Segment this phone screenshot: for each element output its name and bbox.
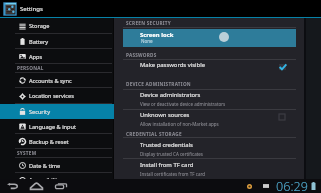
staticText: PERSONAL xyxy=(17,65,44,71)
staticText: Battery xyxy=(29,38,49,46)
staticText: SCREEN SECURITY xyxy=(126,20,171,26)
staticText: Backup & reset xyxy=(29,138,69,146)
button[interactable]: Trusted credentials xyxy=(114,140,304,160)
button[interactable]: Install from TF card xyxy=(114,160,304,180)
staticText: Allow installation of non-Market apps xyxy=(140,121,219,127)
staticText: Unknown sources xyxy=(140,111,190,119)
button[interactable]: Language & input xyxy=(0,119,114,134)
button[interactable]: Accessibility xyxy=(0,173,114,187)
button[interactable]: Home xyxy=(25,179,47,193)
button[interactable]: Make passwords visible xyxy=(114,62,304,76)
button[interactable]: Storage xyxy=(0,18,114,34)
staticText: Date & time xyxy=(29,162,61,170)
button[interactable]: Device administrators xyxy=(114,90,304,110)
staticText: 06:29 xyxy=(276,178,308,192)
staticText: Language & input xyxy=(29,123,76,131)
staticText: Screen lock xyxy=(140,31,174,39)
staticText: Accounts & sync xyxy=(29,77,72,85)
staticText: CREDENTIAL STORAGE xyxy=(126,131,182,137)
staticText: Make passwords visible xyxy=(140,61,206,69)
staticText: Device administrators xyxy=(140,91,201,99)
staticText: View or deactivate device administrators xyxy=(140,101,226,107)
staticText: Trusted credentials xyxy=(140,141,193,149)
staticText: Apps xyxy=(29,53,43,61)
button[interactable]: Screen lock xyxy=(123,29,296,47)
button[interactable]: Recent apps xyxy=(50,179,71,193)
staticText: Location services xyxy=(29,92,74,100)
staticText: SYSTEM xyxy=(17,150,37,156)
other: Settings app xyxy=(4,3,16,15)
button[interactable]: Apps xyxy=(0,49,114,64)
staticText: DEVICE ADMINISTRATION xyxy=(126,81,191,87)
button[interactable]: Accounts & sync xyxy=(0,73,114,88)
staticText: Storage xyxy=(29,22,50,30)
staticText: PASSWORDS xyxy=(126,52,157,58)
button[interactable]: Security xyxy=(0,104,114,119)
staticText: Settings xyxy=(20,5,43,13)
staticText: Install from TF card xyxy=(140,161,194,169)
staticText: Accessibility xyxy=(29,176,61,184)
staticText: None xyxy=(141,38,153,44)
button[interactable]: Battery xyxy=(0,34,114,49)
button[interactable]: Backup & reset xyxy=(0,134,114,149)
button[interactable]: Unknown sources xyxy=(114,110,304,130)
staticText: Security xyxy=(29,108,50,116)
button[interactable]: Back xyxy=(2,179,23,193)
button[interactable]: Location services xyxy=(0,88,114,104)
staticText: Display trusted CA certificates xyxy=(140,151,203,157)
button[interactable]: Date & time xyxy=(0,158,114,173)
staticText: Install certificates from TF card xyxy=(140,171,205,177)
button[interactable]: Settings app xyxy=(0,0,321,18)
